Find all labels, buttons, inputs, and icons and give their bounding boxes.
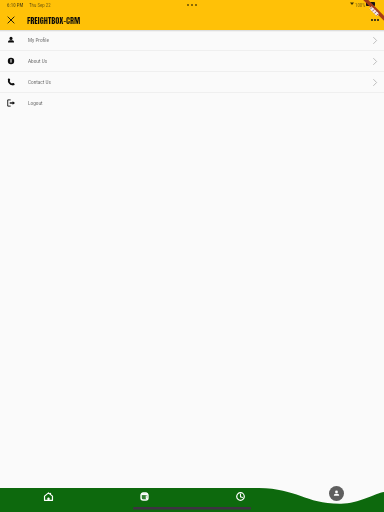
button[interactable]: Orders: [96, 486, 192, 512]
button[interactable]: Close: [2, 11, 19, 29]
staticText: Contact Us: [28, 79, 51, 85]
staticText: 100%: [355, 2, 366, 8]
button[interactable]: My Profile: [0, 30, 384, 50]
staticText: My Profile: [28, 37, 49, 43]
staticText: FREIGHTBOX-CRM: [27, 14, 81, 27]
staticText: About Us: [28, 58, 48, 64]
staticText: Thu Sep 22: [29, 2, 51, 8]
button[interactable]: Contact Us: [0, 72, 384, 92]
button[interactable]: Profile: [329, 486, 344, 501]
button[interactable]: History: [192, 486, 288, 512]
button[interactable]: Logout: [0, 93, 384, 113]
button[interactable]: About Us: [0, 51, 384, 71]
button[interactable]: Home: [0, 486, 96, 512]
staticText: 6:10 PM: [7, 2, 24, 8]
staticText: Logout: [28, 100, 43, 106]
button[interactable]: More options: [365, 11, 384, 29]
